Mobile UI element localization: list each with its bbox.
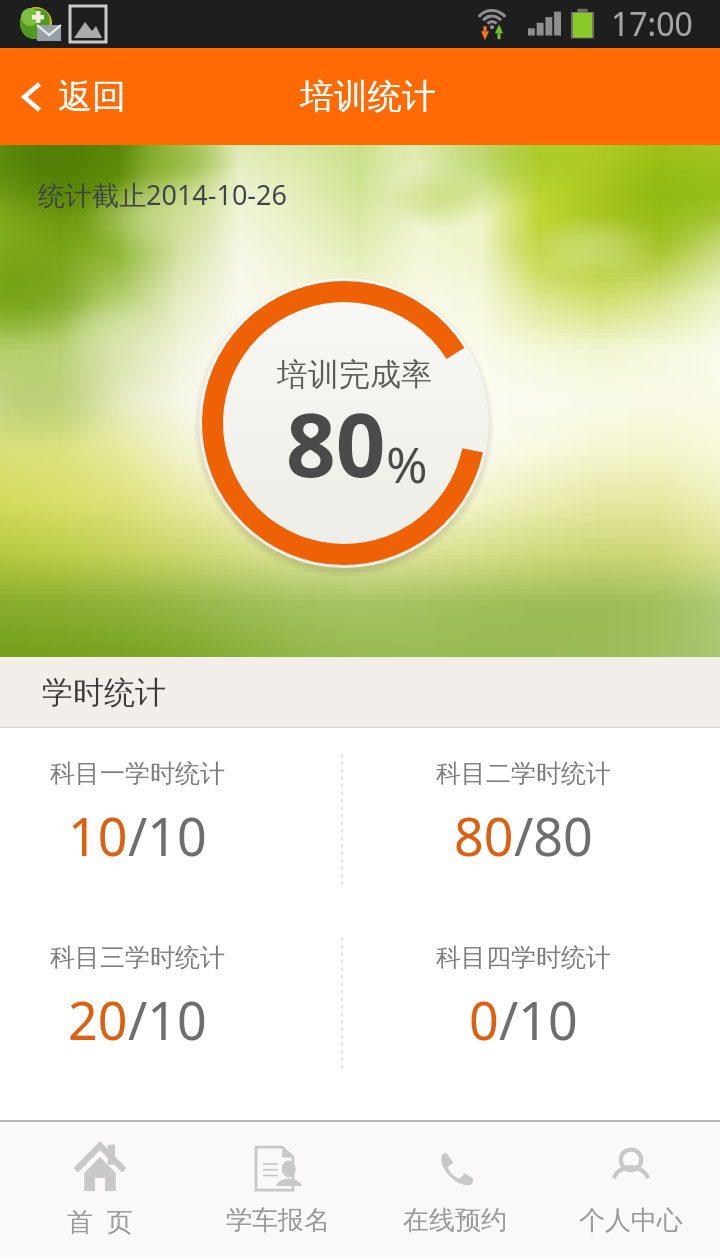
- staticText: 0: [469, 984, 499, 1055]
- staticText: 培训统计: [300, 75, 436, 118]
- button[interactable]: 科目一学时统计: [0, 723, 275, 906]
- staticText: /10: [128, 800, 207, 871]
- staticText: 科目一学时统计: [50, 758, 225, 789]
- staticText: 统计截止2014-10-26: [38, 176, 287, 213]
- button[interactable]: 科目四学时统计: [342, 907, 704, 1090]
- staticText: 学车报名: [226, 1204, 330, 1237]
- staticText: 首 页: [67, 1203, 133, 1239]
- staticText: 个人中心: [579, 1204, 683, 1237]
- staticText: 10: [68, 800, 128, 871]
- staticText: /80: [514, 800, 593, 871]
- staticText: 80: [286, 384, 386, 502]
- staticText: 80: [454, 800, 514, 871]
- staticText: 科目三学时统计: [50, 942, 225, 973]
- staticText: /10: [499, 984, 578, 1055]
- button[interactable]: Enroll: [188, 1124, 367, 1257]
- staticText: 科目四学时统计: [436, 942, 611, 973]
- button[interactable]: 科目三学时统计: [0, 907, 275, 1090]
- staticText: 培训完成率: [277, 355, 432, 394]
- button[interactable]: 科目二学时统计: [342, 723, 704, 906]
- staticText: 17:00: [611, 2, 693, 46]
- button[interactable]: Profile: [541, 1124, 720, 1257]
- button[interactable]: Booking: [365, 1124, 544, 1257]
- staticText: 20: [68, 984, 128, 1055]
- staticText: %: [386, 430, 428, 498]
- staticText: 科目二学时统计: [436, 758, 611, 789]
- button[interactable]: 返回: [14, 48, 126, 145]
- staticText: /10: [128, 984, 207, 1055]
- staticText: 学时统计: [42, 673, 166, 712]
- button[interactable]: Home: [10, 1124, 189, 1257]
- staticText: 返回: [58, 75, 126, 118]
- staticText: 在线预约: [403, 1204, 507, 1237]
